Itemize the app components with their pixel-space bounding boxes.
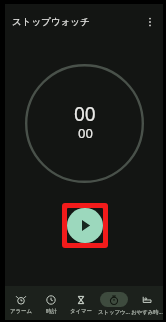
staticText: 00 — [74, 101, 96, 127]
button[interactable]: 時計 — [36, 286, 66, 320]
staticText: ストップウ… — [98, 308, 130, 315]
button[interactable]: おやすみ時… — [131, 286, 163, 320]
staticText: おやすみ時… — [131, 308, 163, 315]
button[interactable]: More options — [139, 11, 161, 33]
staticText: アラーム — [10, 308, 32, 315]
button[interactable]: ストップウ… — [96, 286, 131, 320]
staticText: 00 — [78, 124, 93, 142]
staticText: 時計 — [46, 308, 57, 315]
staticText: ストップウォッチ — [12, 16, 90, 28]
button[interactable]: アラーム — [5, 286, 36, 320]
staticText: タイマー — [70, 308, 92, 315]
button[interactable]: Start — [67, 208, 103, 243]
button[interactable]: タイマー — [66, 286, 96, 320]
